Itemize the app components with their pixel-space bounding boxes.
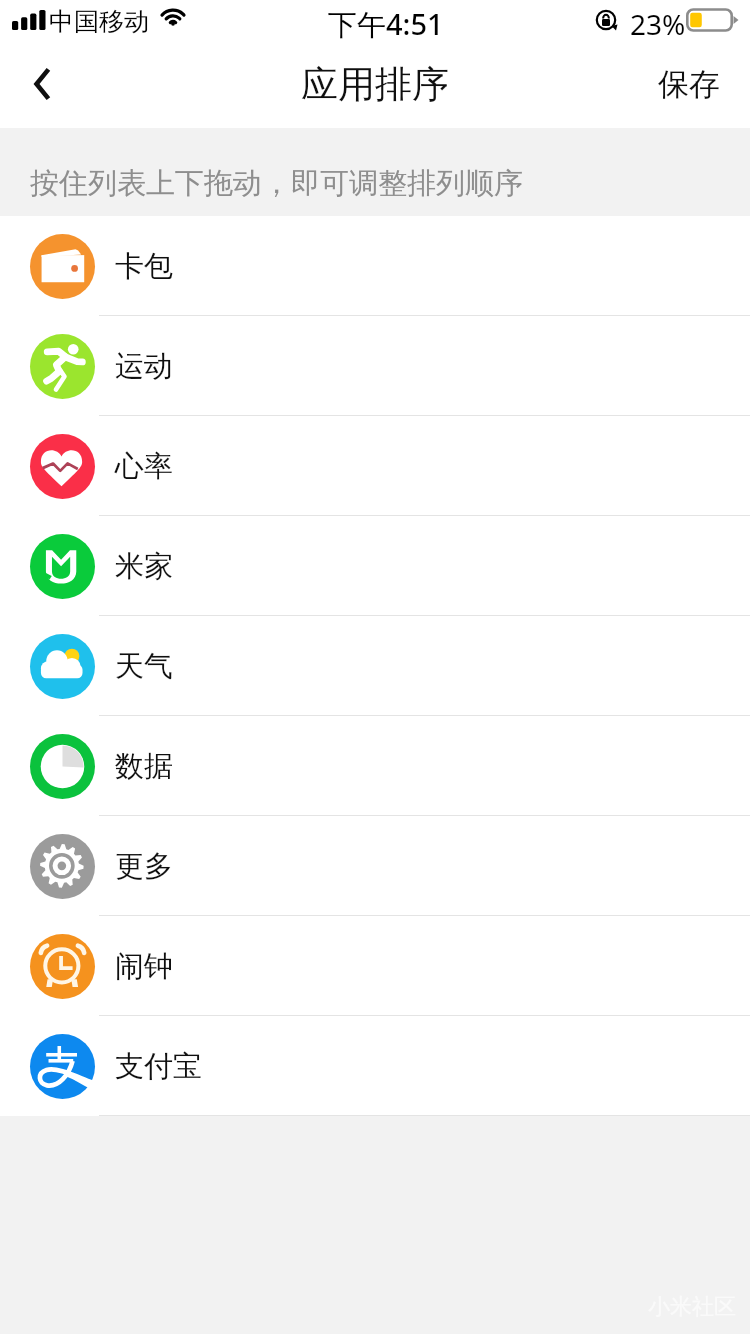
button[interactable]: 天气 xyxy=(0,616,750,716)
staticText: 闹钟 xyxy=(115,948,173,985)
staticText: 天气 xyxy=(115,648,173,685)
button[interactable]: 运动 xyxy=(0,316,750,416)
button[interactable]: 心率 xyxy=(0,416,750,516)
button[interactable]: 保存 xyxy=(658,65,720,104)
staticText: 支付宝 xyxy=(115,1048,202,1085)
staticText: 保存 xyxy=(658,65,720,104)
staticText: 运动 xyxy=(115,348,173,385)
staticText: 23% xyxy=(630,5,686,43)
button[interactable]: 卡包 xyxy=(0,216,750,316)
staticText: 卡包 xyxy=(115,248,173,285)
staticText: 更多 xyxy=(115,848,173,885)
button[interactable]: Back xyxy=(0,40,88,128)
button[interactable]: 闹钟 xyxy=(0,916,750,1016)
staticText: 按住列表上下拖动，即可调整排列顺序 xyxy=(30,165,523,202)
staticText: 应用排序 xyxy=(301,61,449,108)
staticText: 心率 xyxy=(115,448,173,485)
button[interactable]: 支付宝 xyxy=(0,1016,750,1116)
staticText: 中国移动 xyxy=(49,6,149,37)
staticText: 数据 xyxy=(115,748,173,785)
staticText: 米家 xyxy=(115,548,173,585)
button[interactable]: 更多 xyxy=(0,816,750,916)
button[interactable]: 数据 xyxy=(0,716,750,816)
staticText: 下午4:51 xyxy=(328,4,444,44)
button[interactable]: 米家 xyxy=(0,516,750,616)
